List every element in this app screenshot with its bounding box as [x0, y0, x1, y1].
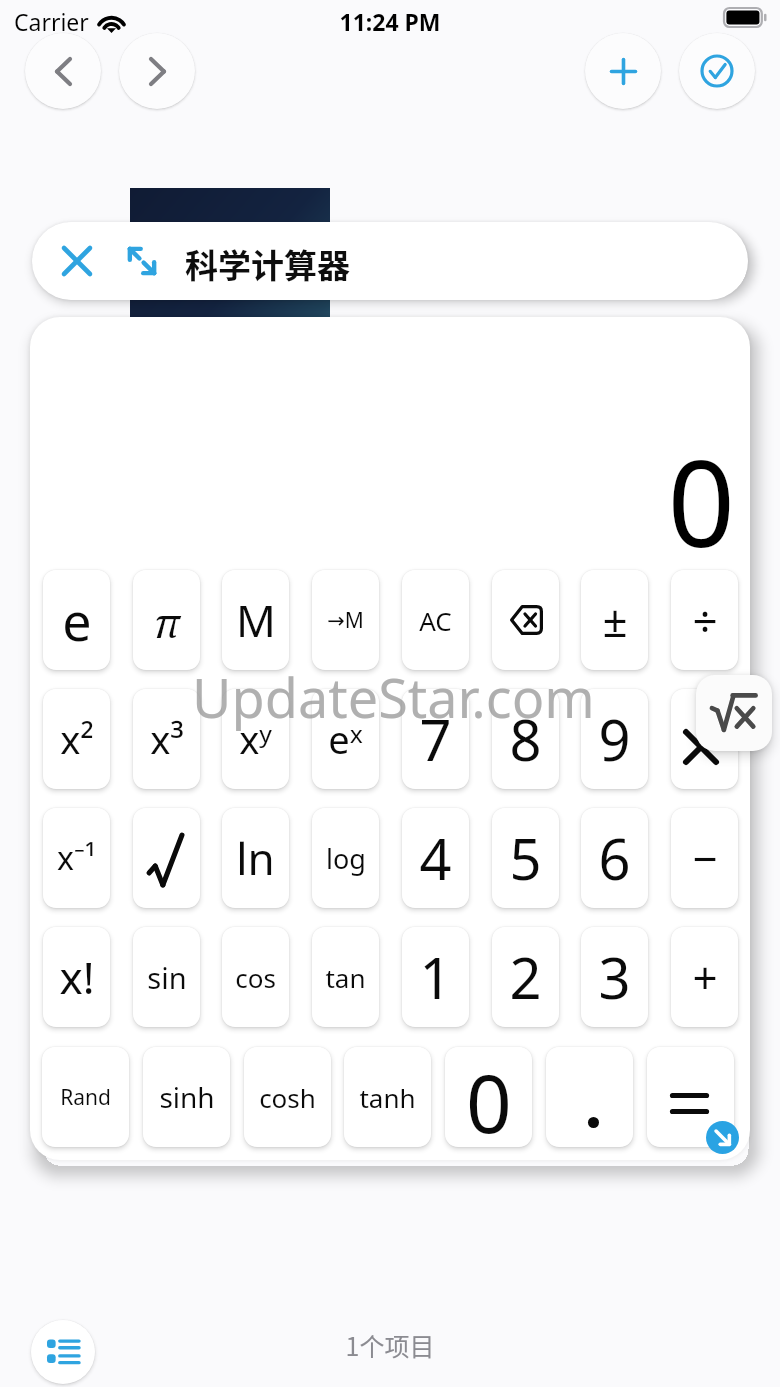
- button[interactable]: x!: [43, 927, 110, 1027]
- button[interactable]: 2: [492, 927, 559, 1027]
- button[interactable]: ÷: [671, 570, 738, 670]
- button[interactable]: cos: [222, 927, 289, 1027]
- button[interactable]: 9: [581, 689, 648, 789]
- button[interactable]: Collapse: [706, 1121, 739, 1154]
- staticText: e: [62, 585, 92, 656]
- button[interactable]: M: [222, 570, 289, 670]
- button[interactable]: Done: [679, 33, 755, 109]
- button[interactable]: log: [312, 808, 379, 908]
- button[interactable]: x⁻¹: [43, 808, 110, 908]
- button[interactable]: [546, 1047, 633, 1147]
- staticText: ln: [236, 828, 275, 888]
- staticText: 7: [419, 701, 452, 777]
- button[interactable]: Back: [25, 33, 101, 109]
- button[interactable]: [492, 570, 559, 670]
- button[interactable]: x²: [43, 689, 110, 789]
- button[interactable]: 8: [492, 689, 559, 789]
- staticText: 8: [509, 701, 542, 777]
- button[interactable]: e: [43, 570, 110, 670]
- button[interactable]: cosh: [244, 1047, 331, 1147]
- button[interactable]: ln: [222, 808, 289, 908]
- button[interactable]: Expand: [116, 235, 168, 287]
- staticText: 1: [419, 939, 452, 1015]
- staticText: 1个项目: [0, 1327, 780, 1363]
- button[interactable]: 1: [402, 927, 469, 1027]
- staticText: 0: [466, 1047, 512, 1147]
- button[interactable]: Close: [51, 235, 103, 287]
- staticText: sin: [147, 958, 187, 997]
- button[interactable]: Forward: [119, 33, 195, 109]
- staticText: ÷: [692, 590, 718, 650]
- button[interactable]: tan: [312, 927, 379, 1027]
- staticText: tan: [325, 960, 366, 995]
- staticText: sinh: [159, 1078, 215, 1116]
- button[interactable]: Rand: [42, 1047, 129, 1147]
- button[interactable]: sin: [133, 927, 200, 1027]
- staticText: 9: [598, 701, 631, 777]
- staticText: 6: [598, 820, 631, 896]
- staticText: x!: [59, 947, 95, 1007]
- button[interactable]: 3: [581, 927, 648, 1027]
- staticText: →M: [327, 606, 364, 635]
- staticText: x²: [60, 713, 94, 765]
- button[interactable]: π: [133, 570, 200, 670]
- button[interactable]: sinh: [143, 1047, 230, 1147]
- staticText: cosh: [259, 1080, 316, 1115]
- button[interactable]: 0: [445, 1047, 532, 1147]
- button[interactable]: +: [671, 927, 738, 1027]
- button[interactable]: List view: [31, 1320, 95, 1384]
- staticText: 11:24 PM: [0, 6, 780, 37]
- button[interactable]: AC: [402, 570, 469, 670]
- staticText: Carrier: [14, 6, 89, 37]
- staticText: 5: [509, 820, 542, 896]
- staticText: tanh: [359, 1080, 416, 1115]
- staticText: AC: [419, 603, 452, 638]
- button[interactable]: [133, 808, 200, 908]
- staticText: ±: [602, 590, 628, 650]
- button[interactable]: 7: [402, 689, 469, 789]
- button[interactable]: Close: [32, 222, 748, 300]
- button[interactable]: xʸ: [222, 689, 289, 789]
- button[interactable]: 6: [581, 808, 648, 908]
- staticText: −: [692, 828, 718, 888]
- staticText: log: [326, 840, 366, 877]
- staticText: UpdateStar.com: [192, 660, 595, 734]
- button[interactable]: 4: [402, 808, 469, 908]
- button[interactable]: [671, 689, 738, 789]
- button[interactable]: [647, 1047, 734, 1147]
- staticText: x⁻¹: [57, 836, 96, 880]
- button[interactable]: 5: [492, 808, 559, 908]
- button[interactable]: tanh: [344, 1047, 431, 1147]
- staticText: cos: [235, 960, 276, 995]
- staticText: 0: [0, 421, 735, 582]
- staticText: +: [692, 947, 718, 1007]
- staticText: 3: [598, 939, 631, 1015]
- staticText: M: [236, 590, 276, 650]
- staticText: Rand: [60, 1083, 111, 1112]
- button[interactable]: [696, 675, 772, 751]
- button[interactable]: −: [671, 808, 738, 908]
- staticText: 科学计算器: [185, 240, 350, 288]
- staticText: 4: [419, 820, 452, 896]
- staticText: π: [154, 595, 180, 649]
- button[interactable]: →M: [312, 570, 379, 670]
- staticText: eˣ: [328, 713, 363, 765]
- button[interactable]: ±: [581, 570, 648, 670]
- button[interactable]: eˣ: [312, 689, 379, 789]
- button[interactable]: Add: [585, 33, 661, 109]
- staticText: x³: [150, 713, 184, 765]
- staticText: xʸ: [239, 713, 272, 765]
- staticText: 2: [509, 939, 542, 1015]
- button[interactable]: x³: [133, 689, 200, 789]
